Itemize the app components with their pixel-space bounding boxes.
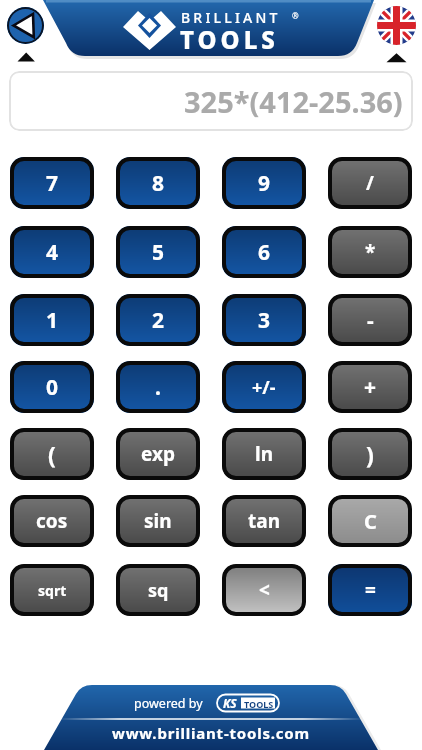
- button[interactable]: 1: [10, 294, 94, 346]
- button[interactable]: 3: [222, 294, 306, 346]
- staticText: www.brilliant-tools.com: [0, 723, 422, 743]
- button[interactable]: +: [328, 361, 412, 413]
- staticText: sin: [144, 508, 172, 534]
- staticText: ®: [292, 10, 299, 21]
- staticText: 5: [152, 238, 165, 267]
- button[interactable]: C: [328, 495, 412, 547]
- staticText: /: [366, 170, 374, 196]
- staticText: 0: [46, 373, 59, 402]
- staticText: cos: [36, 508, 68, 534]
- button[interactable]: =: [328, 564, 412, 616]
- button[interactable]: 8: [116, 157, 200, 209]
- button[interactable]: +/-: [222, 361, 306, 413]
- staticText: 2: [152, 306, 165, 335]
- staticText: C: [364, 508, 377, 535]
- button[interactable]: *: [328, 226, 412, 278]
- staticText: TOOLS: [180, 23, 279, 56]
- staticText: 7: [46, 169, 59, 198]
- staticText: tan: [248, 508, 280, 534]
- staticText: +/-: [252, 375, 276, 400]
- button[interactable]: .: [116, 361, 200, 413]
- button[interactable]: sq: [116, 564, 200, 616]
- staticText: 4: [46, 238, 59, 267]
- button[interactable]: cos: [10, 495, 94, 547]
- button[interactable]: tan: [222, 495, 306, 547]
- staticText: (: [48, 439, 56, 470]
- staticText: exp: [141, 441, 175, 467]
- button[interactable]: 7: [10, 157, 94, 209]
- staticText: 8: [152, 169, 165, 198]
- staticText: .: [155, 373, 161, 402]
- button[interactable]: -: [328, 294, 412, 346]
- staticText: KS: [223, 695, 237, 711]
- button[interactable]: 9: [222, 157, 306, 209]
- staticText: -: [367, 306, 374, 335]
- button[interactable]: exp: [116, 428, 200, 480]
- staticText: powered by: [134, 695, 203, 712]
- button[interactable]: 4: [10, 226, 94, 278]
- staticText: 3: [258, 306, 271, 335]
- staticText: 1: [46, 306, 59, 335]
- staticText: +: [364, 373, 377, 402]
- staticText: =: [365, 577, 376, 603]
- staticText: <: [259, 577, 270, 603]
- staticText: BRILLIANT: [181, 8, 281, 27]
- button[interactable]: [377, 6, 416, 45]
- staticText: 325*(412-25.36): [184, 82, 403, 121]
- button[interactable]: 5: [116, 226, 200, 278]
- staticText: sq: [148, 578, 169, 603]
- button[interactable]: 6: [222, 226, 306, 278]
- staticText: 9: [258, 169, 271, 198]
- button[interactable]: [7, 7, 44, 44]
- button[interactable]: 0: [10, 361, 94, 413]
- button[interactable]: /: [328, 157, 412, 209]
- button[interactable]: <: [222, 564, 306, 616]
- staticText: ln: [255, 441, 274, 467]
- button[interactable]: sqrt: [10, 564, 94, 616]
- staticText: 6: [258, 238, 271, 267]
- button[interactable]: ): [328, 428, 412, 480]
- button[interactable]: (: [10, 428, 94, 480]
- staticText: ): [366, 439, 374, 470]
- button[interactable]: sin: [116, 495, 200, 547]
- staticText: *: [365, 239, 376, 265]
- button[interactable]: ln: [222, 428, 306, 480]
- button[interactable]: 2: [116, 294, 200, 346]
- staticText: TOOLS: [244, 698, 274, 710]
- staticText: sqrt: [38, 581, 67, 600]
